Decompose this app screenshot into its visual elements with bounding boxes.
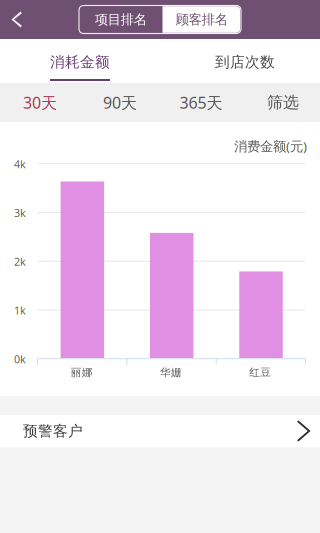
staticText: 华姗 [160,366,182,379]
staticText: 365天 [179,92,222,113]
staticText: 消费金额(元) [234,137,307,155]
staticText: 筛选 [267,93,299,112]
staticText: 4k [14,157,26,171]
staticText: 顾客排名 [176,11,228,28]
staticText: 30天 [23,92,57,113]
staticText: 消耗金额 [50,53,110,71]
staticText: 丽娜 [71,366,93,379]
button[interactable]: 预警客户 [0,415,320,447]
staticText: 2k [14,255,26,269]
button[interactable]: 90天 [80,83,160,122]
staticText: 项目排名 [95,11,147,28]
staticText: 90天 [103,92,137,113]
button[interactable]: 365天 [160,83,240,122]
button[interactable]: 到店次数 [160,39,320,83]
staticText: 3k [14,206,26,220]
button[interactable]: Back [0,0,34,39]
button[interactable]: 消耗金额 [0,39,160,83]
staticText: 0k [14,352,26,366]
staticText: 到店次数 [215,53,275,71]
staticText: 预警客户 [23,422,83,440]
staticText: 红豆 [249,366,271,379]
button[interactable]: 顾客排名 [162,5,241,33]
staticText: 1k [14,303,26,318]
button[interactable]: 筛选 [240,83,320,122]
button[interactable]: 30天 [0,83,80,122]
button[interactable]: 项目排名 [79,5,162,33]
